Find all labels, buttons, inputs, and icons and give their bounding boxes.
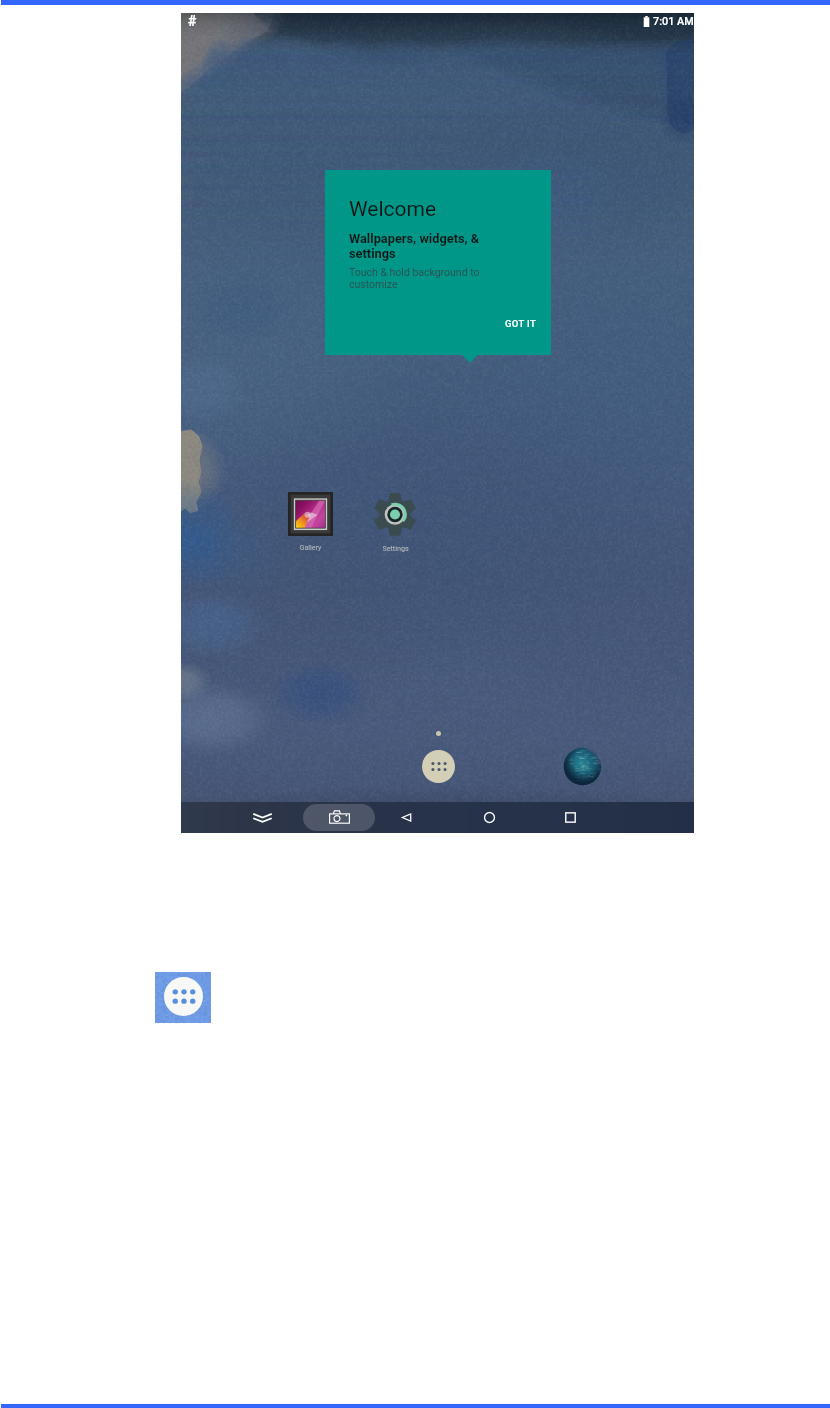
button[interactable]: Settings <box>359 479 431 552</box>
staticText: 7:01 AM <box>653 15 694 28</box>
staticText: # <box>188 13 197 29</box>
button[interactable]: Back <box>384 802 428 833</box>
button[interactable]: Recent apps <box>548 802 592 833</box>
staticText: GOT IT <box>505 318 537 329</box>
staticText: Gallery <box>299 543 322 551</box>
button[interactable]: Home <box>467 802 511 833</box>
staticText: Settings <box>382 544 409 552</box>
staticText: Welcome <box>349 197 437 222</box>
button[interactable]: Browser <box>563 747 602 786</box>
button[interactable]: All apps <box>422 750 455 783</box>
button[interactable]: Expand notifications <box>240 802 284 833</box>
button[interactable]: Gallery <box>274 479 346 551</box>
button[interactable]: All apps <box>155 972 211 1023</box>
staticText: Touch & hold background to customize <box>349 266 480 290</box>
staticText: Wallpapers, widgets, & settings <box>349 231 480 261</box>
button[interactable]: GOT IT <box>499 313 543 334</box>
button[interactable]: Screenshot <box>303 804 375 831</box>
button[interactable]: Welcome <box>325 170 551 355</box>
